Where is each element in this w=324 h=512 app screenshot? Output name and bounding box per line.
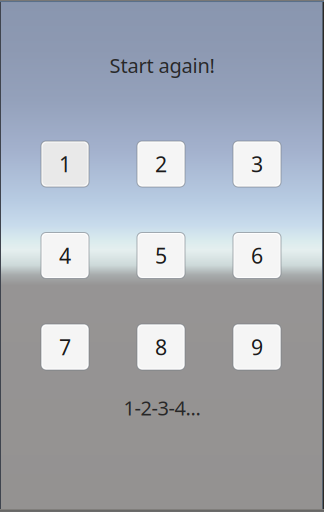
button[interactable]: Start again! bbox=[109, 52, 214, 79]
staticText: 1 bbox=[59, 150, 71, 178]
staticText: 3 bbox=[251, 150, 263, 178]
staticText: 4 bbox=[59, 241, 71, 270]
button[interactable]: 8 bbox=[137, 324, 185, 370]
button[interactable]: 9 bbox=[233, 324, 281, 370]
button[interactable]: 5 bbox=[137, 232, 185, 278]
staticText: Start again! bbox=[109, 52, 214, 79]
button[interactable]: 3 bbox=[233, 141, 281, 187]
staticText: 2 bbox=[155, 150, 167, 178]
button[interactable]: 4 bbox=[41, 232, 89, 278]
staticText: 8 bbox=[155, 333, 167, 361]
button[interactable]: 6 bbox=[233, 232, 281, 278]
staticText: 7 bbox=[59, 333, 71, 361]
staticText: 1-2-3-4... bbox=[123, 395, 200, 421]
button[interactable]: 1 bbox=[41, 141, 89, 187]
staticText: 5 bbox=[155, 241, 167, 270]
button[interactable]: 2 bbox=[137, 141, 185, 187]
staticText: 6 bbox=[251, 241, 263, 270]
button[interactable]: 7 bbox=[41, 324, 89, 370]
staticText: 9 bbox=[251, 333, 263, 361]
